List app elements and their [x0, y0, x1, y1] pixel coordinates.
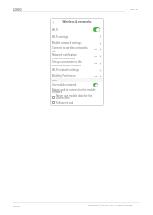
button[interactable]: Checkbox: [50, 100, 104, 105]
button[interactable]: Connect to wireless networks: [50, 46, 104, 53]
button[interactable]: Wi-Fi: [50, 26, 104, 33]
staticText: On: [94, 48, 98, 51]
staticText: Mobile network settings: [52, 41, 82, 45]
staticText: preferred wireless network: [52, 64, 82, 67]
staticText: Data: [52, 79, 57, 82]
button[interactable]: Use mobile network: [50, 82, 104, 88]
button[interactable]: Mobility Preference: [50, 73, 104, 79]
button[interactable]: Checkbox: [52, 96, 55, 99]
staticText: Terms: [13, 204, 20, 207]
button[interactable]: Checkbox: [52, 101, 55, 104]
button[interactable]: Set up connection to the: [50, 60, 104, 67]
staticText: Off: [94, 62, 98, 65]
staticText: Use mobile network: [52, 83, 77, 87]
staticText: On: [94, 55, 98, 58]
staticText: LOGO: [13, 8, 22, 12]
button[interactable]: Always ask to connect to the mobile netw…: [50, 88, 104, 94]
button[interactable]: Toggle: [93, 83, 98, 87]
button[interactable]: Checkbox: [50, 94, 104, 100]
staticText: Set up connection to the: [52, 60, 82, 64]
staticText: Sign in: [130, 7, 138, 10]
staticText: Mobility Preference: [52, 74, 76, 78]
staticText: Connect to wireless networks: [52, 46, 88, 50]
staticText: Wi-Fi: [52, 28, 58, 32]
button[interactable]: Toggle: [93, 27, 100, 32]
staticText: Notify me when open: [52, 57, 76, 60]
staticText: Never use mobile data for the connection: [56, 94, 102, 100]
staticText: Wi-Fi settings: [52, 35, 69, 39]
staticText: Off: [52, 50, 56, 53]
staticText: Wireless & networks: [55, 20, 99, 24]
staticText: Network notification: [52, 53, 77, 57]
staticText: Wi-Fi network settings: [52, 68, 80, 72]
button[interactable]: Back: [52, 21, 55, 24]
button[interactable]: Network notification: [50, 53, 104, 60]
staticText: Follow me ask: [56, 101, 74, 105]
staticText: Always ask to connect to the mobile netw…: [52, 88, 102, 94]
button[interactable]: Wi-Fi settings: [50, 33, 104, 40]
button[interactable]: Wi-Fi network settings: [50, 67, 104, 73]
staticText: Off: [94, 75, 98, 78]
staticText: Copyright © 2024 Co, Inc. All rights res…: [88, 204, 133, 207]
button[interactable]: Mobile network settings: [50, 40, 104, 46]
